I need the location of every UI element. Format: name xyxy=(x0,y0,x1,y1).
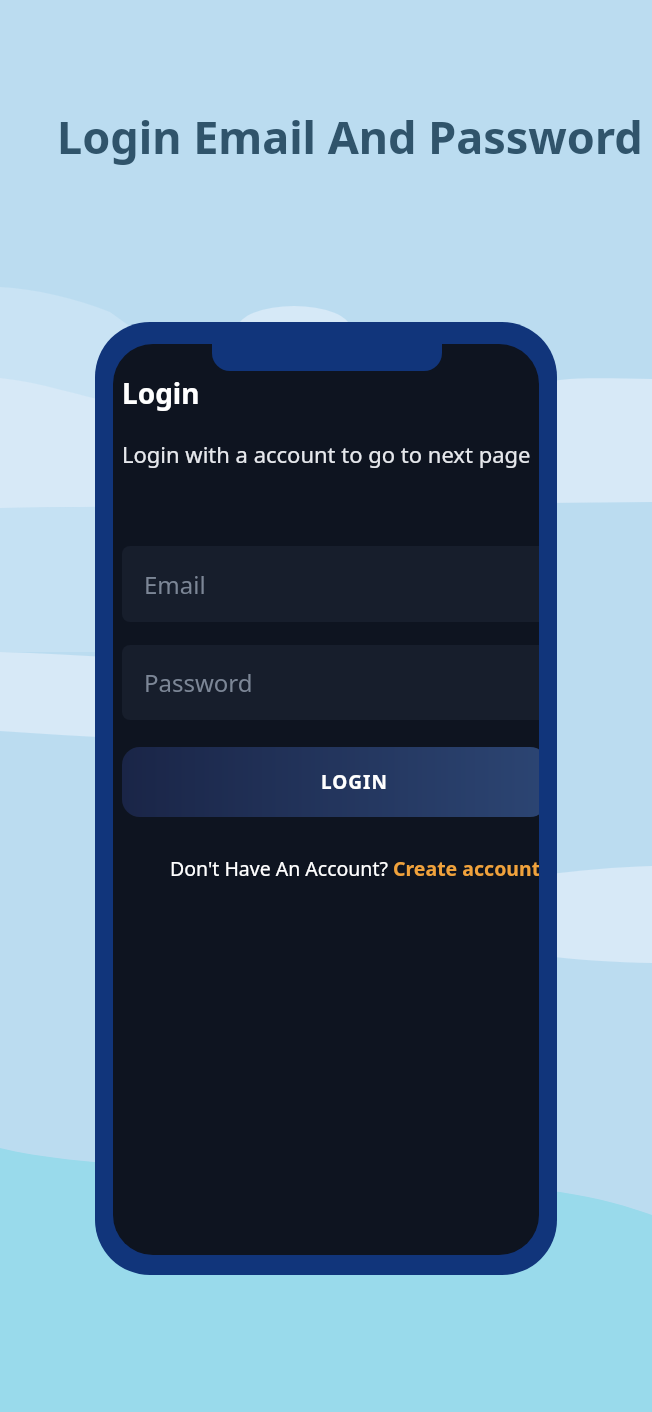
staticText: LOGIN xyxy=(321,769,388,795)
staticText: Don't Have An Account? Create account xyxy=(170,855,539,882)
staticText: Password xyxy=(144,666,253,699)
staticText: Login with a account to go to next page xyxy=(122,439,531,469)
staticText: Email xyxy=(144,568,206,601)
staticText: Login Email And Password xyxy=(57,106,643,167)
staticText: Login xyxy=(122,374,200,412)
